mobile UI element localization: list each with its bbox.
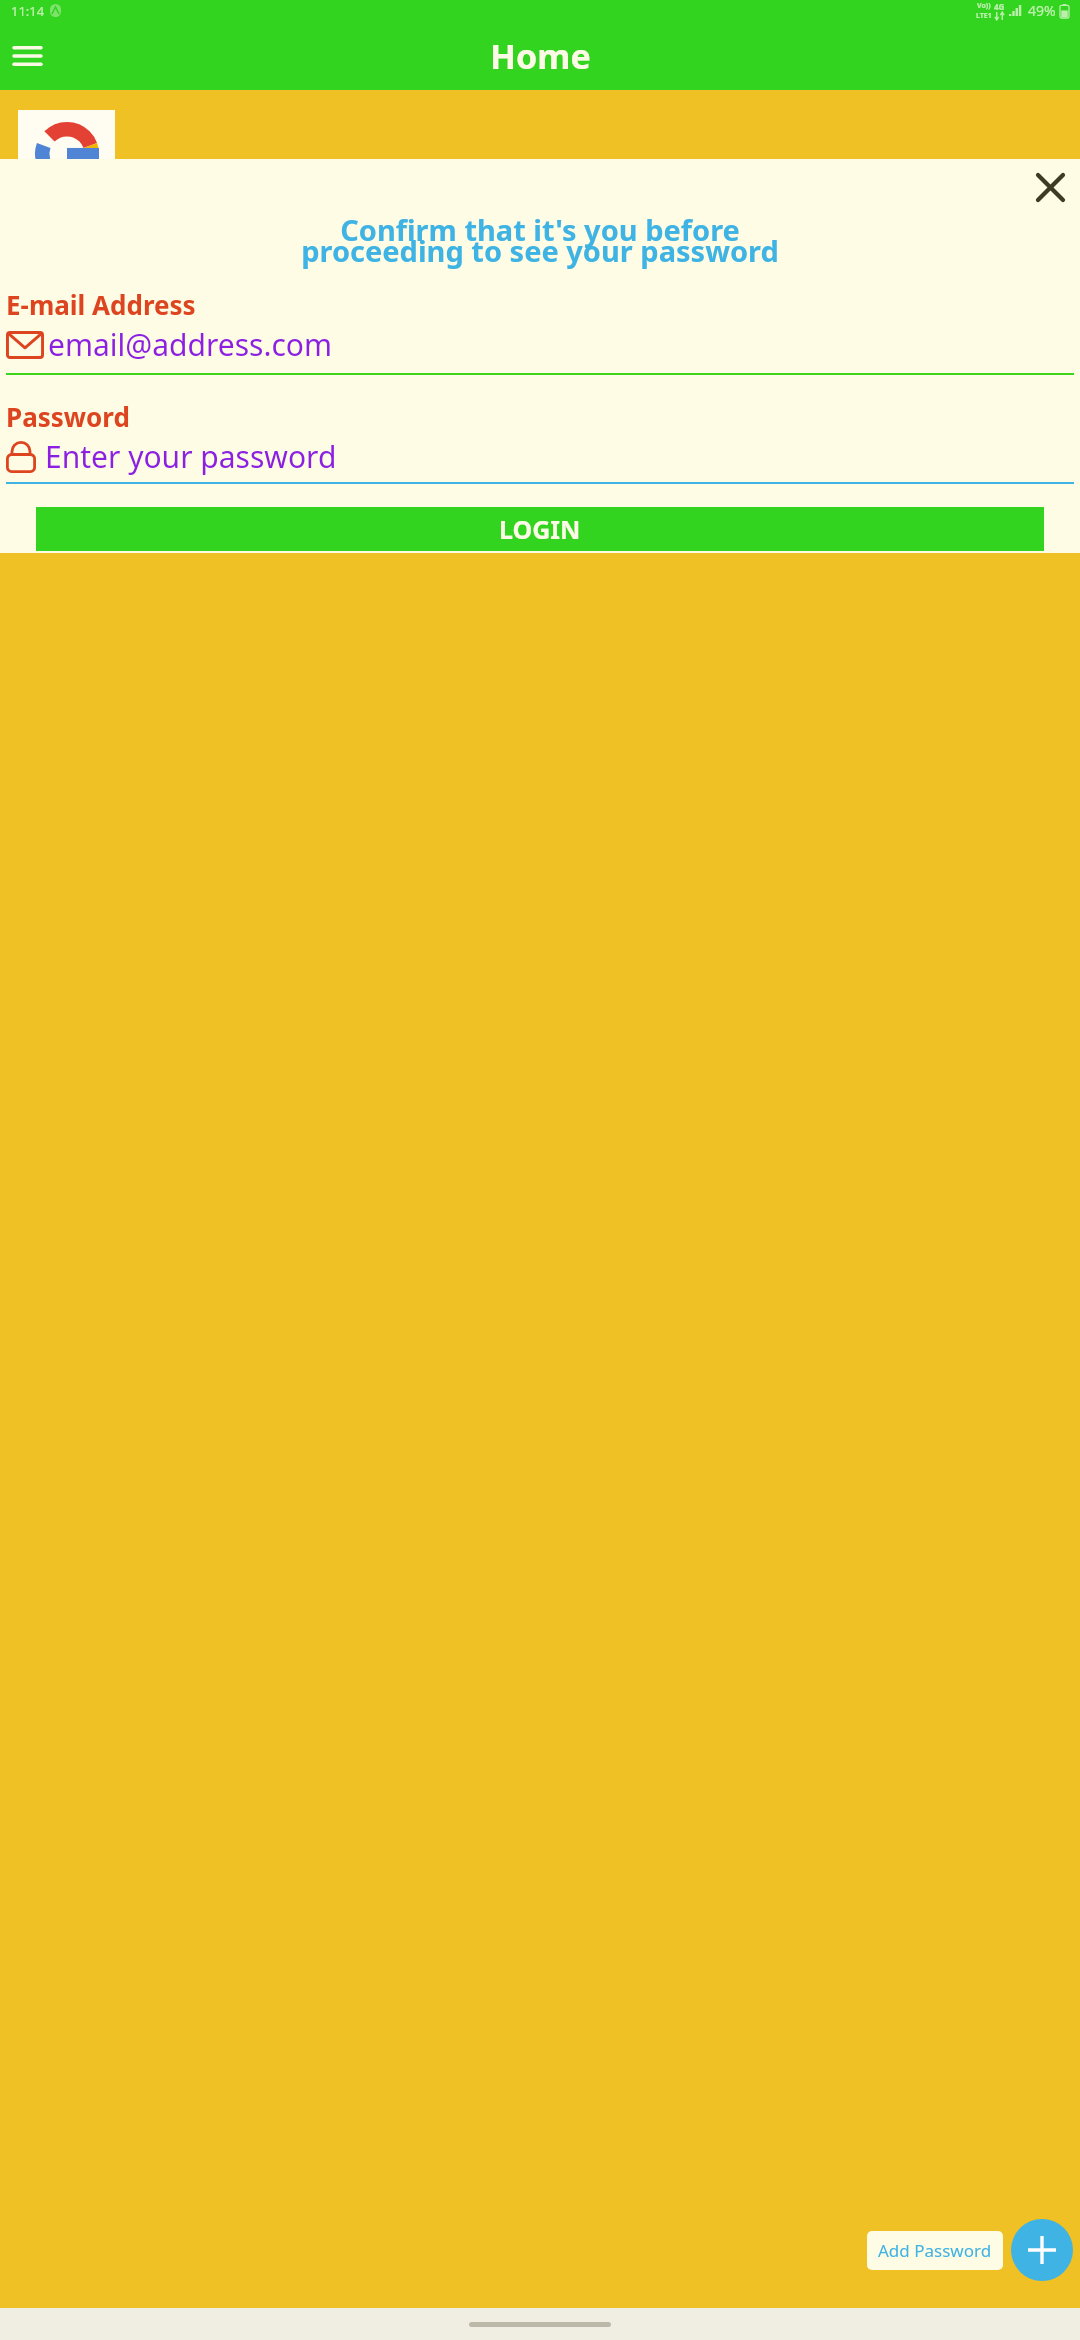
staticText: Confirm that it's you before proceeding … xyxy=(2,210,1078,271)
staticText: 4G xyxy=(994,1,1005,12)
staticText: E-mail Address xyxy=(6,287,196,322)
button: Close xyxy=(0,159,1080,553)
staticText: Add Password xyxy=(878,2239,992,2262)
staticText: Password xyxy=(6,399,130,434)
button[interactable]: LOGIN xyxy=(36,507,1044,551)
staticText: 49% xyxy=(1028,1,1056,20)
staticText: LTE1 xyxy=(976,11,992,21)
button[interactable] xyxy=(18,110,115,230)
button[interactable]: Add Password xyxy=(867,2231,1003,2270)
button[interactable]: Add password xyxy=(1011,2219,1073,2281)
staticText: 11:14 xyxy=(11,2,45,20)
staticText: Enter your password xyxy=(45,436,337,477)
button[interactable]: Open navigation menu xyxy=(4,33,50,79)
staticText: email@address.com xyxy=(48,324,333,365)
button[interactable]: email@address.com xyxy=(6,324,1074,365)
button[interactable]: Close xyxy=(1027,164,1073,210)
button[interactable]: Enter your password xyxy=(6,436,1074,477)
staticText: Home xyxy=(490,33,591,79)
staticText: Vo)) xyxy=(977,1,991,11)
staticText: LOGIN xyxy=(499,512,581,546)
